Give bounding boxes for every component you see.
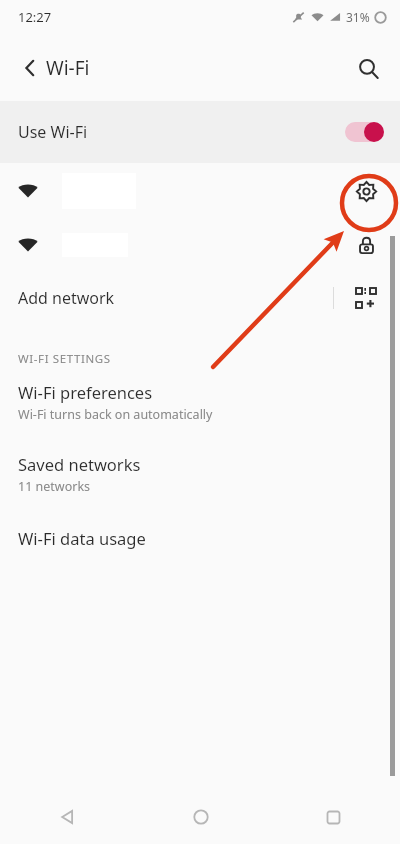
- button[interactable]: Recents: [267, 790, 400, 844]
- button[interactable]: Back: [0, 790, 134, 844]
- staticText: Saved networks: [18, 453, 141, 475]
- button[interactable]: Wi-Fi preferences: [0, 369, 400, 427]
- staticText: 12:27: [18, 8, 52, 26]
- staticText: 31%: [346, 9, 370, 25]
- button[interactable]: Saved networks: [0, 441, 400, 499]
- button[interactable]: Back: [8, 46, 52, 90]
- button[interactable]: Search: [346, 46, 390, 90]
- button[interactable]: Add network: [0, 271, 400, 325]
- button[interactable]: Network settings: [346, 171, 386, 211]
- staticText: 11 networks: [18, 478, 91, 495]
- button[interactable]: Secured network: [0, 219, 400, 271]
- button[interactable]: Secured network: [346, 225, 386, 265]
- staticText: Wi-Fi preferences: [18, 381, 153, 403]
- button[interactable]: Use Wi-Fi: [0, 101, 400, 163]
- staticText: Wi-Fi turns back on automatically: [18, 406, 213, 423]
- button[interactable]: Scan QR code: [346, 278, 386, 318]
- button[interactable]: Home: [134, 790, 267, 844]
- staticText: WI-FI SETTINGS: [18, 351, 111, 367]
- staticText: Add network: [18, 287, 115, 309]
- staticText: Use Wi-Fi: [18, 121, 88, 143]
- staticText: Wi-Fi data usage: [18, 527, 146, 549]
- staticText: Wi-Fi: [46, 55, 90, 81]
- button[interactable]: Wi-Fi data usage: [0, 519, 400, 557]
- button[interactable]: Network settings: [0, 163, 400, 219]
